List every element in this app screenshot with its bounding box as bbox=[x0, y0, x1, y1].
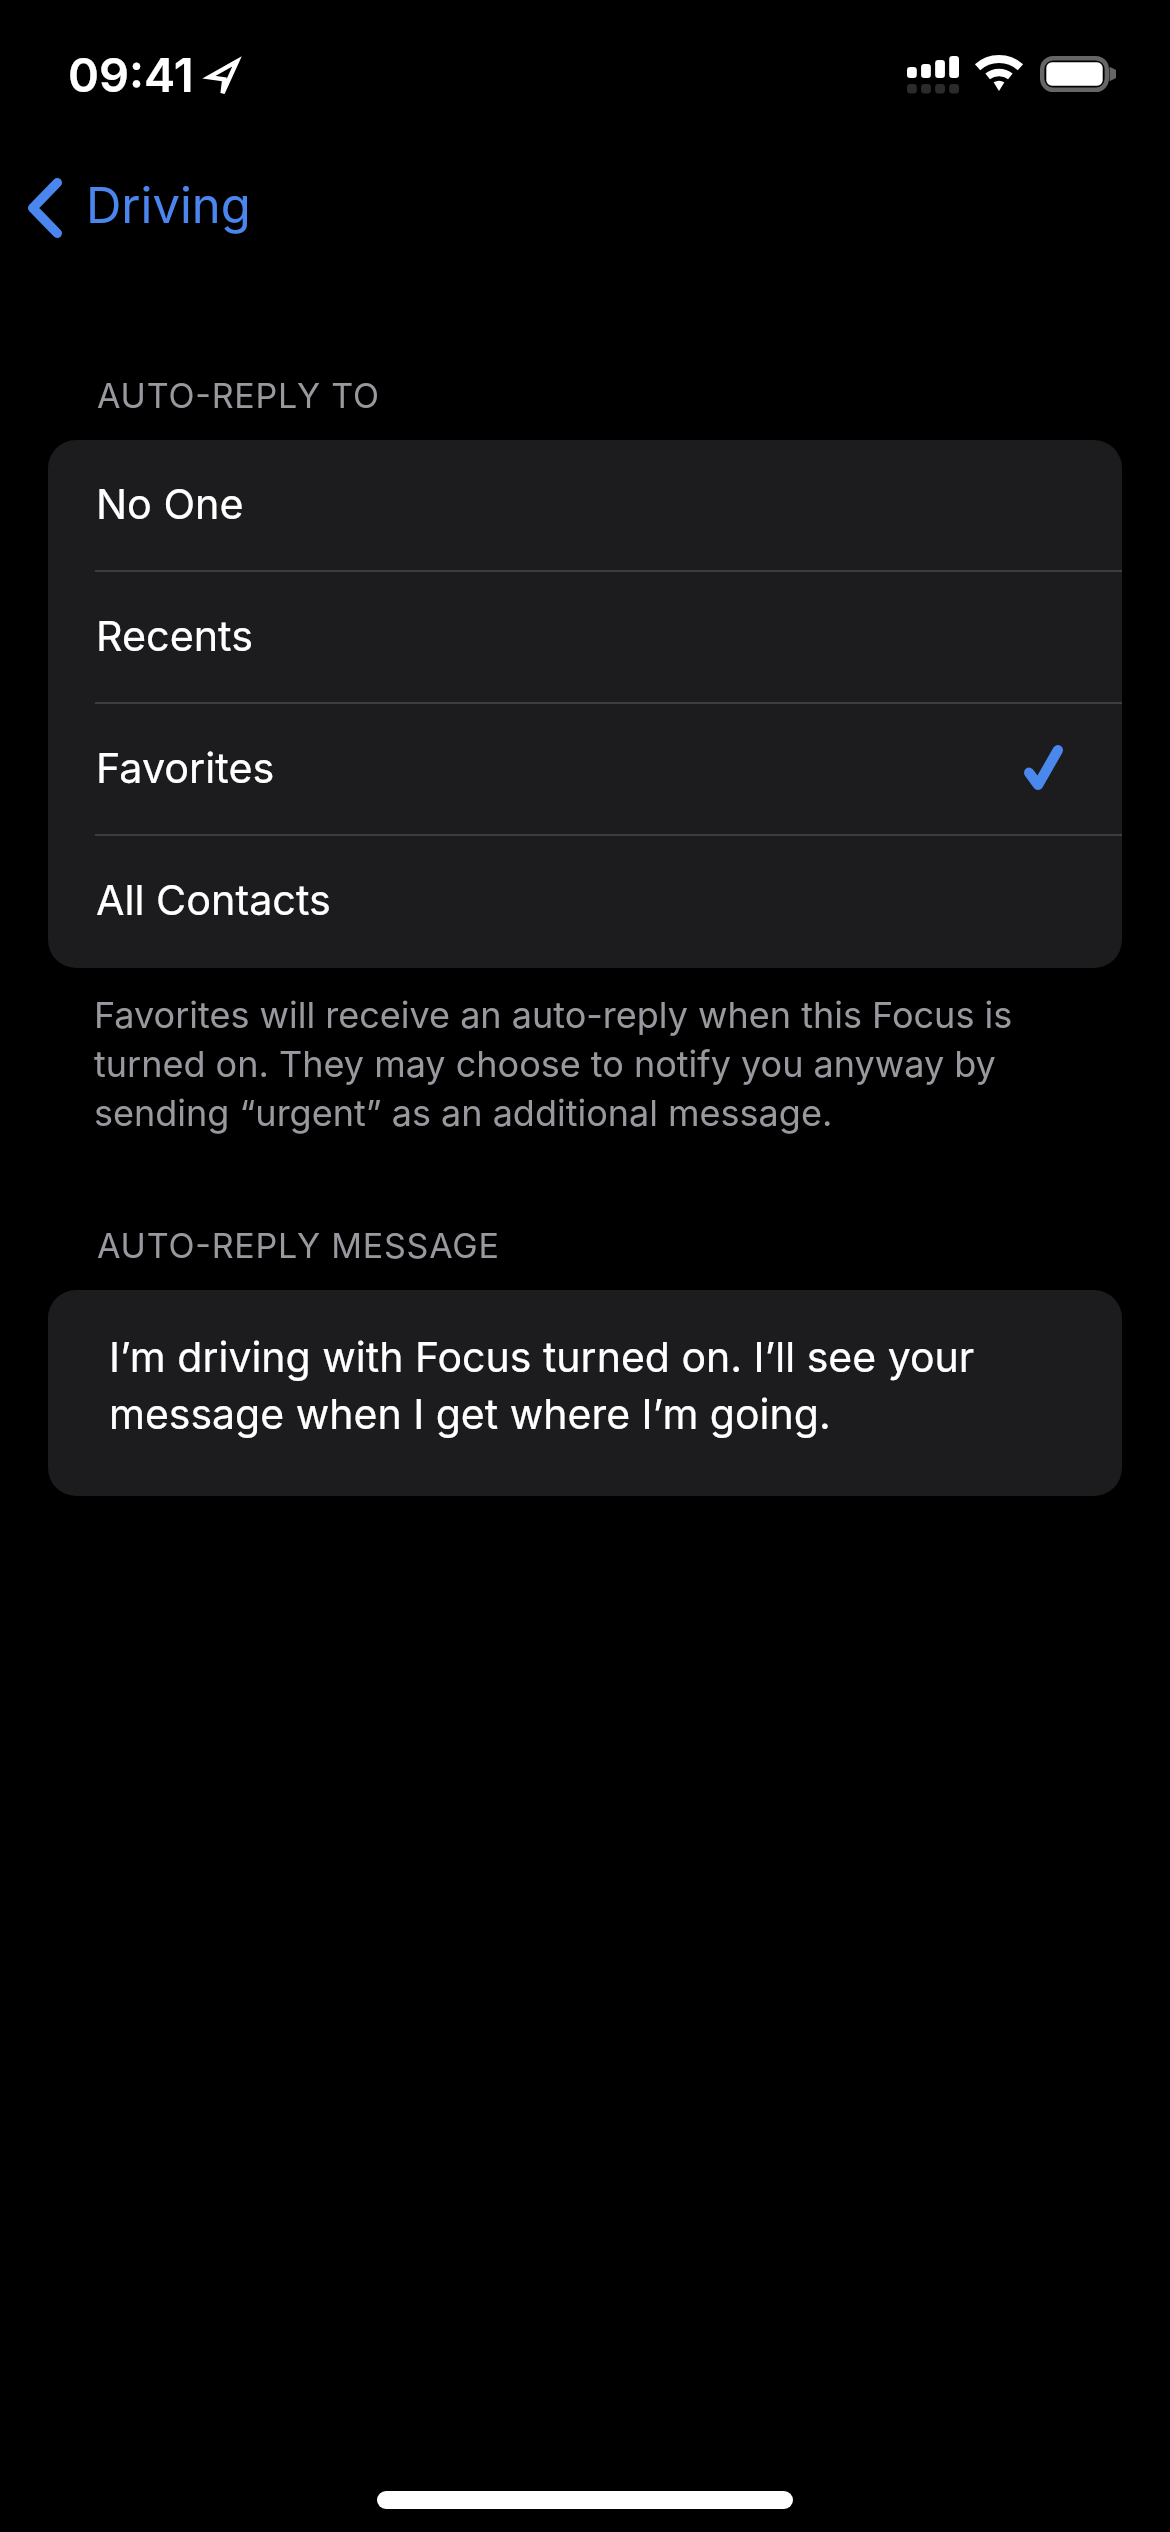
staticText: AUTO-REPLY MESSAGE bbox=[97, 1225, 500, 1266]
staticText: Recents bbox=[96, 611, 254, 661]
staticText: AUTO-REPLY TO bbox=[97, 375, 380, 416]
button[interactable]: Back to Driving bbox=[8, 160, 275, 256]
staticText: Favorites bbox=[96, 743, 275, 793]
button[interactable]: I’m driving with Focus turned on. I’ll s… bbox=[48, 1290, 1122, 1496]
button[interactable]: All Contacts bbox=[48, 836, 1122, 968]
staticText: Driving bbox=[86, 176, 251, 235]
staticText: No One bbox=[96, 479, 244, 529]
staticText: 09:41 bbox=[68, 46, 194, 103]
button[interactable]: Recents bbox=[48, 572, 1122, 704]
staticText: I’m driving with Focus turned on. I’ll s… bbox=[109, 1332, 1009, 1439]
button[interactable]: Favorites bbox=[48, 704, 1122, 836]
button[interactable]: No One bbox=[48, 440, 1122, 572]
staticText: All Contacts bbox=[96, 875, 331, 925]
staticText: Favorites will receive an auto-reply whe… bbox=[94, 993, 1024, 1135]
